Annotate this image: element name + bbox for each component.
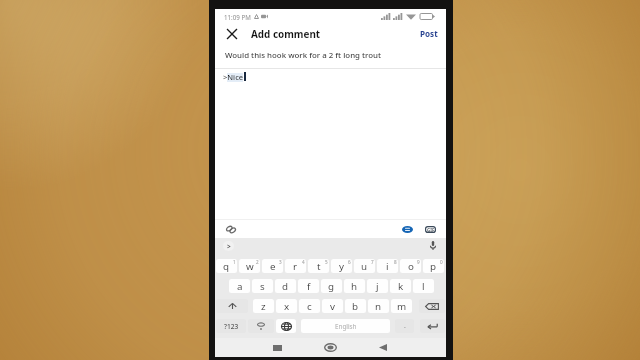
button[interactable]: y bbox=[331, 259, 352, 273]
button[interactable]: Change language bbox=[276, 319, 296, 333]
button[interactable]: a bbox=[229, 279, 250, 293]
staticText: n bbox=[375, 300, 382, 313]
staticText: i bbox=[386, 260, 389, 273]
staticText: y bbox=[339, 260, 344, 273]
button[interactable]: w bbox=[239, 259, 260, 273]
button[interactable]: Voice input bbox=[420, 238, 446, 253]
button[interactable]: c bbox=[299, 299, 320, 313]
button[interactable]: l bbox=[413, 279, 434, 293]
staticText: l bbox=[422, 280, 425, 293]
staticText: m bbox=[397, 300, 407, 313]
button[interactable]: e bbox=[262, 259, 283, 273]
staticText: r bbox=[293, 260, 298, 273]
staticText: t bbox=[317, 260, 321, 273]
staticText: 9 bbox=[417, 259, 420, 265]
button[interactable]: ?123 bbox=[216, 319, 246, 333]
button[interactable]: k bbox=[390, 279, 411, 293]
staticText: h bbox=[351, 280, 358, 293]
button[interactable]: m bbox=[391, 299, 412, 313]
staticText: v bbox=[330, 300, 335, 313]
button[interactable]: Recents bbox=[265, 338, 289, 357]
staticText: d bbox=[282, 280, 289, 293]
button[interactable]: s bbox=[252, 279, 273, 293]
button[interactable]: q bbox=[216, 259, 237, 273]
button[interactable]: Back bbox=[371, 338, 395, 357]
staticText: English bbox=[335, 322, 357, 331]
button[interactable]: More suggestions bbox=[223, 241, 234, 251]
button[interactable]: j bbox=[367, 279, 388, 293]
staticText: e bbox=[270, 260, 276, 273]
staticText: k bbox=[398, 280, 404, 293]
staticText: Add comment bbox=[251, 27, 321, 40]
staticText: > bbox=[227, 242, 231, 251]
staticText: w bbox=[246, 260, 254, 273]
button[interactable]: d bbox=[275, 279, 296, 293]
button[interactable]: Enter bbox=[420, 319, 445, 333]
button[interactable]: p bbox=[423, 259, 444, 273]
staticText: 6 bbox=[348, 259, 351, 265]
button[interactable]: Home bbox=[318, 338, 342, 357]
button[interactable]: u bbox=[354, 259, 375, 273]
staticText: Would this hook work for a 2 ft long tro… bbox=[225, 50, 382, 61]
button[interactable]: o bbox=[400, 259, 421, 273]
staticText: 2 bbox=[256, 259, 259, 265]
staticText: o bbox=[408, 260, 414, 273]
staticText: s bbox=[260, 280, 265, 293]
button[interactable]: g bbox=[321, 279, 342, 293]
button[interactable]: n bbox=[368, 299, 389, 313]
staticText: g bbox=[328, 280, 335, 293]
button[interactable]: v bbox=[322, 299, 343, 313]
staticText: 7 bbox=[371, 259, 374, 265]
button[interactable]: f bbox=[298, 279, 319, 293]
button[interactable]: i bbox=[377, 259, 398, 273]
staticText: 3 bbox=[279, 259, 282, 265]
staticText: 0 bbox=[440, 259, 443, 265]
button[interactable]: Period bbox=[395, 319, 414, 333]
staticText: ?123 bbox=[224, 322, 239, 331]
staticText: q bbox=[223, 260, 230, 273]
button[interactable]: x bbox=[276, 299, 297, 313]
staticText: u bbox=[361, 260, 368, 273]
button[interactable]: t bbox=[308, 259, 329, 273]
staticText: x bbox=[284, 300, 290, 313]
button[interactable]: Shift bbox=[216, 299, 248, 313]
button[interactable]: Backspace bbox=[419, 299, 445, 313]
button[interactable]: Space bbox=[301, 319, 390, 333]
staticText: z bbox=[261, 300, 266, 313]
staticText: c bbox=[307, 300, 312, 313]
staticText: Post bbox=[420, 28, 438, 39]
staticText: >Nice bbox=[223, 72, 244, 82]
staticText: GIF bbox=[427, 227, 435, 233]
staticText: 8 bbox=[394, 259, 397, 265]
staticText: 4 bbox=[302, 259, 305, 265]
staticText: 1 bbox=[233, 259, 236, 265]
staticText: p bbox=[430, 260, 437, 273]
staticText: j bbox=[376, 280, 379, 293]
staticText: f bbox=[307, 280, 311, 293]
button[interactable]: GIF bbox=[420, 220, 440, 238]
staticText: 11:09 PM bbox=[224, 13, 251, 21]
button[interactable]: b bbox=[345, 299, 366, 313]
button[interactable]: r bbox=[285, 259, 306, 273]
button[interactable]: z bbox=[253, 299, 274, 313]
button[interactable]: h bbox=[344, 279, 365, 293]
staticText: b bbox=[352, 300, 359, 313]
button[interactable]: Attach link bbox=[221, 220, 241, 238]
staticText: . bbox=[404, 321, 406, 331]
button[interactable]: Emoji bbox=[397, 220, 417, 238]
button[interactable]: Post bbox=[413, 24, 446, 43]
staticText: a bbox=[237, 280, 243, 293]
button[interactable]: Close bbox=[215, 24, 248, 43]
button[interactable]: Emoji bbox=[248, 319, 274, 333]
staticText: 5 bbox=[325, 259, 328, 265]
